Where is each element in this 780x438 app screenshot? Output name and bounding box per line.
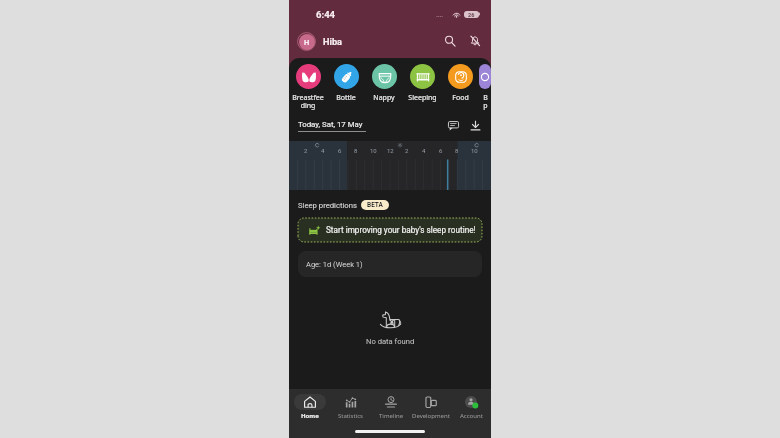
button[interactable]: Age: 1d (Week 1)	[298, 251, 482, 277]
staticText: 4	[422, 147, 426, 154]
staticText: Age: 1d (Week 1)	[306, 260, 363, 269]
button[interactable]: Sleeping	[403, 58, 441, 103]
button[interactable]: Today, Sat, 17 May	[298, 120, 366, 132]
staticText: Sleep predictions	[298, 201, 357, 210]
button[interactable]: Statistics	[330, 389, 371, 425]
button[interactable]: Download	[467, 117, 484, 134]
staticText: Start improving your baby's sleep routin…	[326, 225, 476, 235]
button[interactable]: Bottle	[327, 58, 365, 103]
staticText: 26	[468, 12, 475, 18]
staticText: 10	[370, 147, 377, 154]
staticText: 12	[387, 147, 394, 154]
staticText: Statistics	[338, 412, 363, 420]
staticText: Breastfee ding	[292, 93, 324, 110]
button[interactable]: Development	[411, 389, 451, 425]
button[interactable]: Home	[289, 389, 330, 425]
staticText: 8	[354, 147, 358, 154]
staticText: 6:44	[316, 9, 336, 20]
button[interactable]: H	[297, 32, 316, 51]
button[interactable]: Timeline	[371, 389, 411, 425]
staticText: Bottle	[336, 93, 356, 103]
staticText: Nappy	[373, 93, 395, 103]
staticText: No data found	[366, 337, 415, 346]
staticText: Sleeping	[408, 93, 437, 103]
staticText: 6	[439, 147, 443, 154]
staticText: Home	[301, 412, 319, 420]
staticText: Development	[412, 412, 450, 420]
staticText: Today, Sat, 17 May	[298, 120, 363, 129]
button[interactable]: Notes	[445, 117, 462, 134]
button[interactable]: Notifications off	[464, 30, 486, 52]
staticText: 6	[338, 147, 342, 154]
staticText: BETA	[367, 201, 383, 209]
staticText: Food	[452, 93, 469, 103]
staticText: H	[304, 38, 310, 47]
staticText: 2	[304, 147, 308, 154]
staticText: Timeline	[379, 412, 404, 420]
button[interactable]: Nappy	[365, 58, 403, 103]
button[interactable]: Food	[441, 58, 479, 103]
staticText: 2	[405, 147, 409, 154]
button[interactable]: Breastfee ding	[289, 58, 327, 110]
button[interactable]: Start improving your baby's sleep routin…	[298, 218, 482, 242]
button[interactable]: B p	[479, 58, 491, 110]
staticText: Account	[460, 412, 483, 420]
button[interactable]: Search	[439, 30, 461, 52]
staticText: 8	[455, 147, 459, 154]
staticText: 4	[321, 147, 325, 154]
staticText: 10	[471, 147, 478, 154]
staticText: Hiba	[323, 36, 343, 47]
staticText: B p	[483, 93, 488, 110]
button[interactable]: Account	[451, 389, 491, 425]
